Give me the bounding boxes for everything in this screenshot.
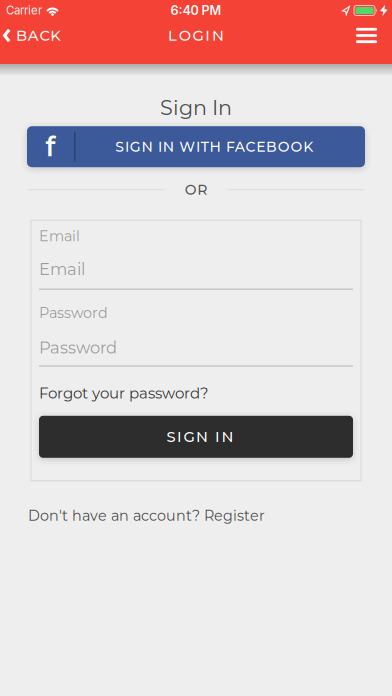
staticText: Don't have an account? [28,507,200,524]
button[interactable]: Email [39,259,353,290]
button[interactable]: Forgot your password? [39,384,209,402]
staticText: BACK [16,27,61,44]
staticText: Register [204,507,265,524]
staticText: OR [185,181,207,198]
staticText: Email [39,227,80,245]
staticText: SIGN IN WITH FACEBOOK [115,138,313,155]
staticText: Sign In [160,95,232,120]
staticText: LOGIN [168,27,224,44]
staticText: Email [39,259,85,279]
button[interactable]: Register [204,507,265,524]
staticText: 6:40 PM [170,3,221,18]
staticText: Forgot your password? [39,384,209,402]
button[interactable]: SIGN IN [39,416,353,458]
button[interactable]: Menu [356,28,392,43]
button[interactable]: BACK [0,27,61,44]
staticText: Carrier [6,4,42,17]
button[interactable]: Password [39,338,353,366]
button[interactable]: f [27,126,365,167]
staticText: SIGN IN [166,428,233,446]
staticText: f [45,130,55,163]
staticText: Password [39,338,117,357]
staticText: Password [39,304,108,322]
